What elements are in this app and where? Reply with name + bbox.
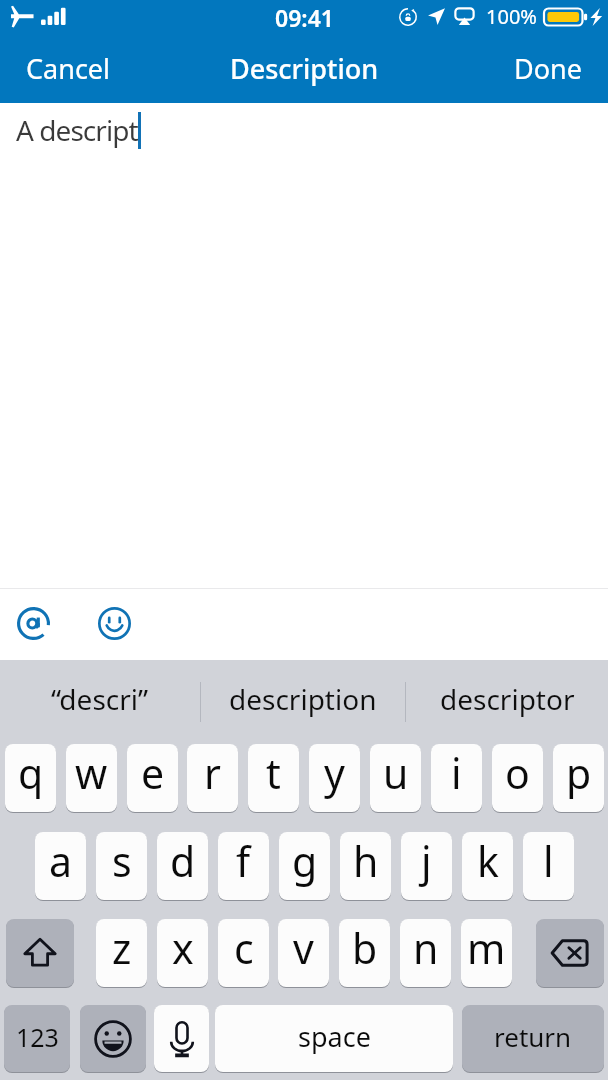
- staticText: g: [292, 833, 318, 889]
- staticText: p: [566, 745, 592, 801]
- button[interactable]: Shift: [6, 919, 74, 987]
- staticText: s: [112, 833, 132, 889]
- staticText: o: [505, 745, 530, 801]
- button[interactable]: space: [215, 1005, 453, 1072]
- staticText: A descript: [16, 111, 138, 149]
- staticText: q: [18, 745, 44, 801]
- button[interactable]: o: [492, 744, 543, 812]
- button[interactable]: b: [339, 919, 390, 987]
- staticText: b: [352, 920, 378, 976]
- button[interactable]: v: [278, 919, 329, 987]
- button[interactable]: h: [340, 832, 391, 900]
- staticText: l: [543, 833, 554, 889]
- button[interactable]: Backspace: [536, 919, 604, 987]
- button[interactable]: q: [5, 744, 56, 812]
- staticText: description: [229, 680, 377, 718]
- button[interactable]: a: [35, 832, 86, 900]
- button[interactable]: r: [187, 744, 238, 812]
- button[interactable]: e: [127, 744, 178, 812]
- staticText: t: [266, 745, 281, 801]
- button[interactable]: description: [201, 660, 405, 743]
- button[interactable]: 123: [4, 1005, 70, 1072]
- staticText: j: [421, 833, 432, 889]
- staticText: d: [170, 833, 196, 889]
- staticText: 123: [16, 1020, 59, 1054]
- staticText: i: [451, 745, 462, 801]
- staticText: “descri”: [51, 680, 149, 718]
- button[interactable]: Mention: [11, 601, 55, 645]
- button[interactable]: d: [157, 832, 208, 900]
- staticText: w: [75, 745, 108, 801]
- staticText: Done: [514, 50, 582, 87]
- button[interactable]: Dictate: [154, 1005, 209, 1072]
- button[interactable]: Cancel: [14, 44, 123, 93]
- staticText: k: [477, 833, 499, 889]
- staticText: c: [234, 920, 254, 976]
- button[interactable]: f: [218, 832, 269, 900]
- button[interactable]: Emoji keyboard: [80, 1005, 146, 1072]
- staticText: h: [353, 833, 379, 889]
- button[interactable]: z: [96, 919, 147, 987]
- button[interactable]: descriptor: [406, 660, 608, 743]
- staticText: u: [383, 745, 409, 801]
- staticText: r: [204, 745, 221, 801]
- staticText: m: [467, 920, 506, 976]
- button[interactable]: m: [461, 919, 512, 987]
- staticText: n: [413, 920, 439, 976]
- staticText: 100%: [486, 3, 537, 30]
- button[interactable]: Emoji: [92, 601, 136, 645]
- button[interactable]: j: [401, 832, 452, 900]
- button[interactable]: t: [248, 744, 299, 812]
- staticText: y: [324, 745, 345, 801]
- staticText: f: [236, 833, 251, 889]
- staticText: Description: [230, 50, 379, 87]
- button[interactable]: “descri”: [0, 660, 200, 743]
- button[interactable]: x: [157, 919, 208, 987]
- button[interactable]: y: [309, 744, 360, 812]
- button[interactable]: i: [431, 744, 482, 812]
- staticText: e: [141, 745, 165, 801]
- button[interactable]: g: [279, 832, 330, 900]
- button[interactable]: p: [553, 744, 604, 812]
- staticText: 09:41: [275, 2, 334, 33]
- staticText: x: [172, 920, 194, 976]
- button[interactable]: u: [370, 744, 421, 812]
- staticText: descriptor: [440, 680, 575, 718]
- button[interactable]: return: [462, 1005, 604, 1072]
- staticText: z: [112, 920, 132, 976]
- button[interactable]: c: [218, 919, 269, 987]
- staticText: Cancel: [26, 50, 111, 87]
- button[interactable]: Done: [502, 44, 594, 93]
- button[interactable]: k: [462, 832, 513, 900]
- button[interactable]: n: [400, 919, 451, 987]
- staticText: a: [49, 833, 73, 889]
- button[interactable]: w: [66, 744, 117, 812]
- button[interactable]: l: [523, 832, 574, 900]
- staticText: v: [293, 920, 314, 976]
- button[interactable]: s: [96, 832, 147, 900]
- staticText: return: [494, 1019, 572, 1054]
- staticText: space: [298, 1018, 371, 1055]
